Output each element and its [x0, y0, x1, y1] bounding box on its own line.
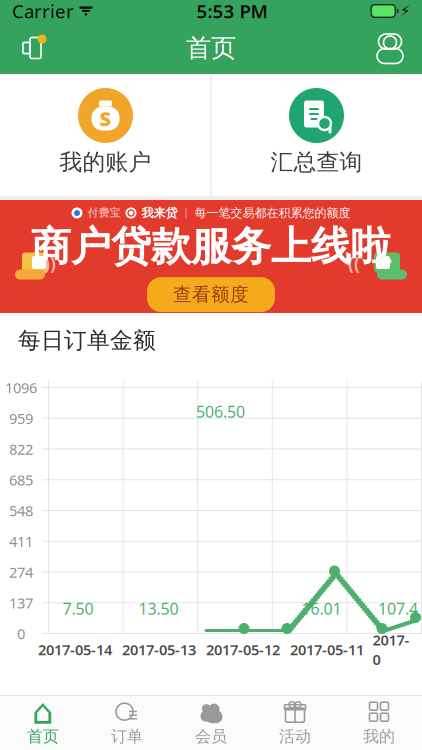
- staticText: 506.50: [196, 401, 245, 422]
- staticText: 548: [9, 501, 33, 520]
- staticText: 我来贷: [141, 206, 177, 220]
- staticText: 16.01: [301, 598, 341, 619]
- staticText: 822: [9, 439, 33, 459]
- staticText: 137: [9, 593, 33, 612]
- staticText: 会员: [195, 727, 227, 746]
- staticText: 0: [17, 624, 25, 643]
- staticText: 274: [9, 562, 33, 582]
- button[interactable]: 商户贷款服务上线啦，查看额度: [0, 200, 422, 313]
- staticText: Carrier: [12, 0, 74, 23]
- staticText: 商户贷款服务上线啦: [31, 222, 391, 271]
- staticText: 首页: [27, 727, 59, 746]
- staticText: 活动: [279, 727, 311, 746]
- button[interactable]: 订单: [85, 696, 169, 750]
- staticText: 2017-0: [372, 630, 409, 669]
- button[interactable]: S: [0, 74, 210, 200]
- button[interactable]: 汇总查询: [211, 74, 421, 200]
- button[interactable]: 消息通知: [4, 22, 60, 74]
- staticText: 2017-05-11: [290, 640, 364, 659]
- staticText: 付费宝: [87, 206, 120, 219]
- staticText: ⚡︎: [400, 3, 410, 19]
- staticText: 汇总查询: [270, 148, 362, 176]
- staticText: 5:53 PM: [196, 0, 267, 23]
- staticText: 13.50: [138, 598, 178, 619]
- staticText: 959: [9, 408, 33, 428]
- staticText: ⌂: [32, 692, 54, 731]
- staticText: ((: [348, 252, 396, 275]
- button[interactable]: 活动: [253, 696, 337, 750]
- staticText: 7.50: [62, 598, 93, 619]
- button[interactable]: 我的: [337, 696, 421, 750]
- staticText: 1096: [5, 378, 37, 397]
- staticText: 订单: [111, 727, 143, 746]
- staticText: 每日订单金额: [18, 327, 156, 354]
- staticText: 107.4: [378, 598, 418, 619]
- staticText: 685: [9, 470, 33, 489]
- staticText: S: [99, 105, 111, 132]
- staticText: 查看额度: [173, 283, 249, 306]
- staticText: 首页: [186, 32, 236, 63]
- staticText: 2017-05-14: [38, 640, 112, 659]
- staticText: 2017-05-13: [122, 640, 196, 659]
- button[interactable]: 会员: [169, 696, 253, 750]
- staticText: 411: [9, 531, 33, 551]
- staticText: 每一笔交易都在积累您的额度: [194, 206, 350, 220]
- button[interactable]: ⌂: [1, 696, 85, 750]
- staticText: 我的账户: [59, 148, 151, 176]
- button[interactable]: 客服: [362, 22, 418, 74]
- staticText: 2017-05-12: [206, 640, 280, 659]
- staticText: )): [44, 252, 56, 275]
- staticText: 我的: [363, 727, 395, 746]
